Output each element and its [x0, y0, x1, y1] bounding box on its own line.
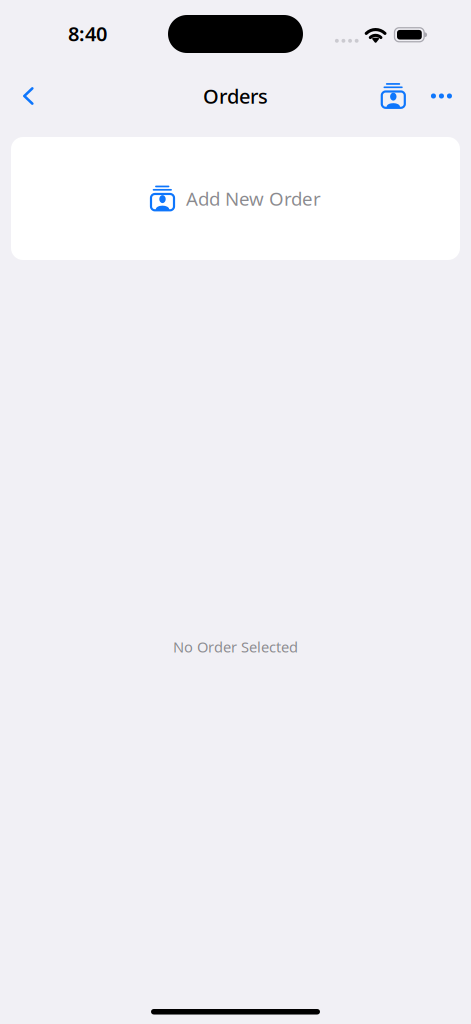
button[interactable]: More options — [413, 78, 471, 114]
button[interactable]: Contacts — [374, 78, 413, 114]
staticText: Add New Order — [186, 186, 321, 211]
staticText: Orders — [203, 83, 268, 109]
button[interactable]: Add New Order — [11, 137, 460, 260]
staticText: 8:40 — [68, 20, 107, 47]
button[interactable]: Back — [0, 78, 50, 114]
staticText: No Order Selected — [173, 637, 298, 656]
